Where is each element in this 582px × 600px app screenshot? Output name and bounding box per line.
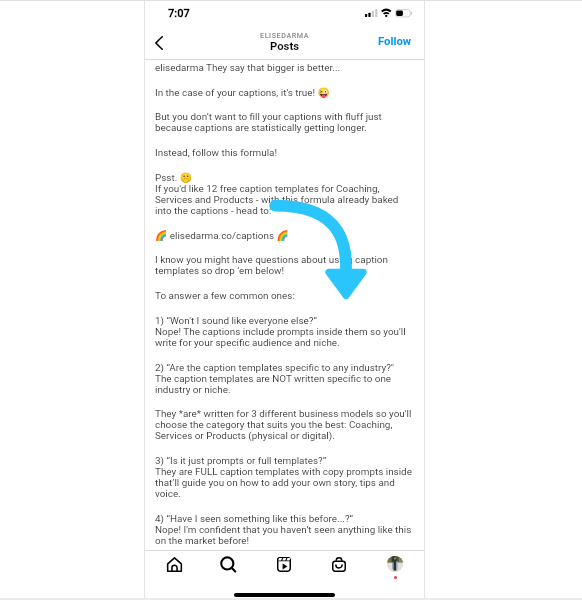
staticText: Psst. 🤫 If you'd like 12 free caption te… — [155, 172, 413, 216]
staticText: To answer a few common ones: — [155, 290, 413, 302]
button[interactable]: Search — [211, 547, 245, 581]
staticText: 7:07 — [168, 7, 190, 20]
button[interactable]: Shop — [322, 547, 356, 581]
staticText: Instead, follow this formula! — [155, 147, 413, 159]
button[interactable]: Reels — [267, 547, 301, 581]
staticText: ELISEDARMA — [260, 31, 310, 39]
staticText: 2) “Are the caption templates specific t… — [155, 362, 413, 395]
staticText: They *are* written for 3 different busin… — [155, 408, 413, 441]
button[interactable]: Follow — [378, 35, 412, 48]
staticText: 4) “Have I seen something like this befo… — [155, 513, 413, 546]
staticText: 3) “Is it just prompts or full templates… — [155, 455, 413, 499]
staticText: Posts — [270, 40, 300, 53]
button[interactable]: Home — [157, 547, 191, 581]
staticText: 1) “Won't I sound like everyone else?” N… — [155, 315, 413, 348]
staticText: Follow — [378, 35, 412, 48]
staticText: But you don’t want to fill your captions… — [155, 111, 413, 133]
staticText: 🌈 elisedarma.co/captions 🌈 — [155, 230, 413, 242]
button[interactable]: Profile — [378, 547, 412, 581]
staticText: elisedarma They say that bigger is bette… — [155, 62, 413, 74]
button[interactable]: Back — [148, 32, 170, 54]
staticText: In the case of your captions, it's true!… — [155, 87, 413, 99]
staticText: I know you might have questions about us… — [155, 254, 413, 276]
